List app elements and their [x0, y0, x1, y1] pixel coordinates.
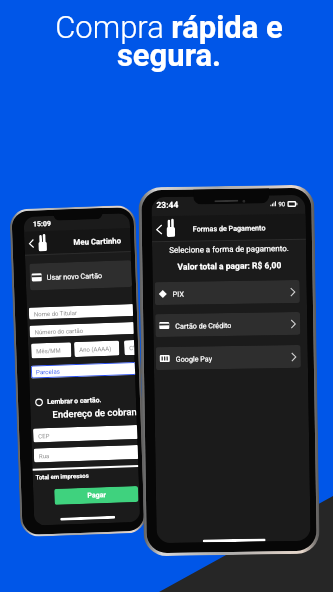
staticText: Parcelas [36, 368, 60, 375]
staticText: Lembrar o cartão. [47, 396, 102, 406]
staticText: 15:09 [33, 220, 52, 228]
button[interactable]: Número do cartão [29, 322, 134, 338]
staticText: Google Pay [176, 354, 213, 363]
staticText: PIX [173, 290, 185, 298]
staticText: Rua [39, 452, 50, 459]
staticText: Cartão de Crédito [175, 321, 232, 330]
staticText: Endereço de cobrança [52, 406, 137, 420]
staticText: 23:44 [156, 200, 178, 210]
button[interactable]: CEP [33, 425, 137, 443]
button[interactable]: Nome do Titular [29, 304, 133, 320]
staticText: 90 [278, 200, 285, 207]
button[interactable]: Parcelas [31, 362, 135, 379]
button[interactable]: Mês/MM [31, 342, 71, 359]
button[interactable]: CVV [124, 340, 134, 355]
button[interactable]: PIX [155, 280, 300, 305]
staticText: Total em impressos [36, 472, 90, 481]
staticText: Valor total a pagar: R$ 6,00 [152, 260, 306, 272]
staticText: CEP [38, 432, 50, 439]
button[interactable]: Cartão de Crédito [155, 312, 300, 337]
button[interactable]: Usar novo Cartão [29, 260, 132, 291]
staticText: Número do cartão [34, 327, 84, 335]
staticText: Formas de Pagamento [193, 223, 266, 232]
staticText: Pagar [87, 491, 106, 500]
staticText: Mês/MM [36, 347, 61, 354]
button[interactable]: Rua [34, 445, 138, 463]
button[interactable]: Ano (AAAA) [74, 341, 119, 357]
staticText: Selecione a forma de pagamento. [152, 244, 306, 255]
button[interactable]: Voltar [24, 235, 39, 252]
staticText: Ano (AAAA) [79, 345, 111, 353]
staticText: Meu Cartinho [73, 236, 122, 247]
button[interactable]: Lembrar o cartão. [35, 396, 102, 406]
button[interactable]: Pagar [54, 486, 139, 505]
staticText: CVV [129, 344, 134, 351]
button[interactable]: Voltar [152, 218, 168, 240]
staticText: Nome do Titular [34, 309, 77, 317]
staticText: Usar novo Cartão [47, 271, 103, 281]
button[interactable]: Google Pay [156, 345, 301, 370]
staticText: Compra rápida e segura. [5, 9, 333, 74]
